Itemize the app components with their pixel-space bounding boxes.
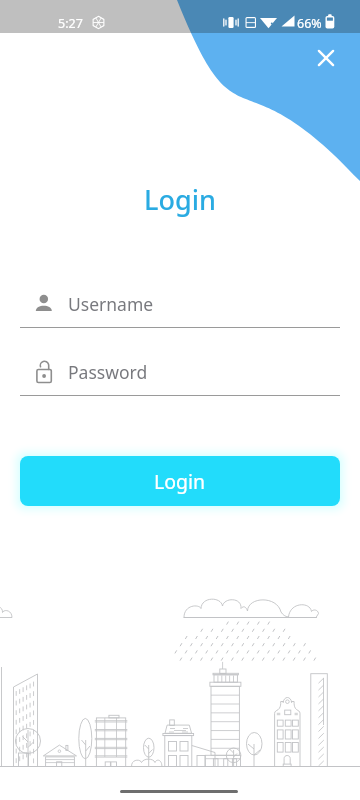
staticText: Login [0,181,360,218]
staticText: 5:27 [58,15,83,32]
button[interactable]: Login [20,456,340,506]
button[interactable]: Close [310,42,342,74]
staticText: Password [68,360,148,384]
staticText: Username [68,292,154,316]
button[interactable]: Username [20,288,340,328]
staticText: 66% [297,15,322,32]
button[interactable]: Password [20,356,340,396]
staticText: Login [154,468,206,495]
